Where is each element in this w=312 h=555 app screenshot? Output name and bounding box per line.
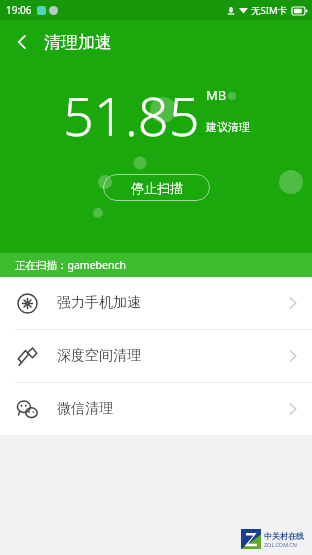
staticText: 中关村在线 <box>264 531 304 541</box>
staticText: 强力手机加速 <box>57 294 289 312</box>
button[interactable]: 停止扫描 <box>103 174 210 201</box>
staticText: 19:06 <box>6 3 32 17</box>
staticText: 深度空间清理 <box>57 347 289 365</box>
button[interactable]: Back <box>0 20 44 64</box>
button[interactable]: 深度空间清理 <box>0 330 312 382</box>
staticText: ZOL.COM.CN <box>264 541 297 548</box>
staticText: MB <box>206 86 227 104</box>
staticText: 微信清理 <box>57 400 289 418</box>
button[interactable]: 微信清理 <box>0 383 312 435</box>
staticText: 清理加速 <box>44 32 112 53</box>
staticText: 无SIM卡 <box>251 4 288 17</box>
button[interactable]: 强力手机加速 <box>0 277 312 329</box>
staticText: 正在扫描：gamebench <box>15 258 126 272</box>
staticText: 停止扫描 <box>131 180 183 196</box>
staticText: 51.85 <box>63 78 200 152</box>
staticText: 建议清理 <box>206 120 250 134</box>
